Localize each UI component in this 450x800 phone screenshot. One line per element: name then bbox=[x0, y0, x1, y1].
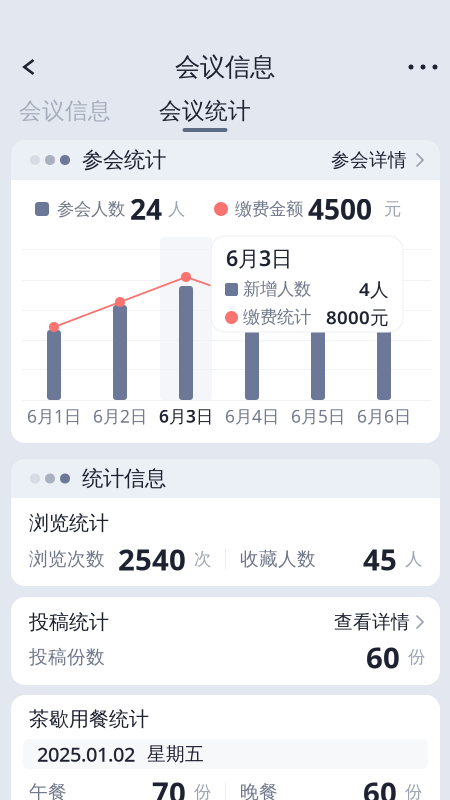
staticText: 45 bbox=[363, 539, 397, 578]
staticText: 参会详情 bbox=[331, 148, 407, 171]
staticText: 2025.01.02 bbox=[37, 741, 135, 767]
staticText: 参会统计 bbox=[82, 147, 166, 173]
staticText: 6月1日 bbox=[27, 404, 81, 427]
staticText: 2540 bbox=[118, 539, 186, 578]
staticText: 60 bbox=[363, 772, 397, 800]
staticText: 6月2日 bbox=[93, 404, 147, 427]
staticText: 午餐 bbox=[29, 780, 67, 800]
staticText: 6月3日 bbox=[226, 244, 292, 272]
staticText: 投稿份数 bbox=[29, 645, 105, 668]
staticText: 次 bbox=[194, 548, 211, 570]
button[interactable]: 投稿统计 bbox=[11, 610, 440, 634]
staticText: 4人 bbox=[359, 277, 389, 301]
staticText: 会议信息 bbox=[19, 97, 111, 125]
staticText: 茶歇用餐统计 bbox=[29, 707, 149, 731]
staticText: 份 bbox=[194, 781, 211, 800]
staticText: 份 bbox=[405, 781, 422, 800]
staticText: 人 bbox=[168, 198, 185, 220]
button[interactable]: 会议统计 bbox=[159, 93, 251, 129]
staticText: 6月5日 bbox=[291, 404, 345, 427]
staticText: 24 bbox=[130, 190, 162, 228]
staticText: 份 bbox=[408, 646, 425, 668]
staticText: 星期五 bbox=[147, 742, 204, 765]
staticText: 查看详情 bbox=[334, 610, 410, 633]
staticText: 参会人数 bbox=[57, 198, 125, 220]
staticText: 6月3日 bbox=[159, 404, 213, 427]
button[interactable]: 参会统计 bbox=[11, 140, 440, 180]
button[interactable]: 返回 bbox=[7, 45, 51, 89]
staticText: 元 bbox=[384, 198, 401, 220]
staticText: 缴费统计 bbox=[243, 306, 311, 328]
staticText: 缴费金额 bbox=[235, 198, 303, 220]
staticText: 投稿统计 bbox=[29, 610, 109, 634]
button[interactable]: 会议信息 bbox=[19, 93, 111, 129]
staticText: 60 bbox=[366, 637, 400, 676]
staticText: 会议统计 bbox=[159, 97, 251, 125]
button[interactable]: 更多 bbox=[399, 45, 447, 89]
staticText: 统计信息 bbox=[82, 465, 166, 492]
staticText: 4500 bbox=[308, 190, 372, 228]
staticText: 浏览统计 bbox=[29, 511, 109, 535]
staticText: 收藏人数 bbox=[240, 547, 316, 570]
staticText: 会议信息 bbox=[175, 51, 275, 82]
staticText: 晚餐 bbox=[240, 780, 278, 800]
staticText: 8000元 bbox=[326, 305, 389, 329]
staticText: 人 bbox=[405, 548, 422, 570]
staticText: 6月6日 bbox=[357, 404, 411, 427]
staticText: 新增人数 bbox=[243, 278, 311, 300]
staticText: 70 bbox=[152, 772, 186, 800]
staticText: 浏览次数 bbox=[29, 547, 105, 570]
staticText: 6月4日 bbox=[225, 404, 279, 427]
